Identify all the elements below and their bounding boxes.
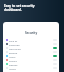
button[interactable]: About xyxy=(3,66,59,70)
button[interactable]: Privacy xyxy=(3,58,59,62)
staticText: About xyxy=(9,67,16,70)
staticText: Passcode xyxy=(9,43,20,46)
staticText: Face ID xyxy=(9,39,18,42)
button[interactable]: Passcode xyxy=(3,42,59,46)
staticText: Security xyxy=(3,31,59,35)
staticText: Alerts xyxy=(9,55,16,58)
staticText: Easy to set security xyxy=(4,4,35,8)
staticText: Devices xyxy=(9,63,18,66)
button[interactable]: Alerts xyxy=(3,54,59,58)
button[interactable]: Backup xyxy=(3,50,59,54)
staticText: Privacy xyxy=(9,59,17,62)
button[interactable]: Face ID xyxy=(3,38,59,42)
staticText: Two-factor xyxy=(9,47,21,50)
staticText: dashboard. xyxy=(4,8,22,12)
staticText: Backup xyxy=(9,51,18,54)
button[interactable]: Two-factor xyxy=(3,46,59,50)
button[interactable]: Devices xyxy=(3,62,59,66)
